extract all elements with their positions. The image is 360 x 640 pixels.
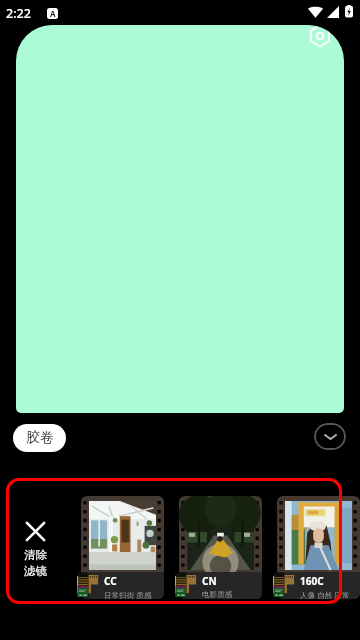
staticText: 2:22 [6,5,31,22]
staticText: CC [104,574,117,588]
staticText: 电影质感 [202,590,233,599]
button[interactable]: 160C [277,496,360,599]
staticText: 160C [300,574,324,588]
staticText: CN [202,574,217,588]
staticText: A [50,8,56,19]
staticText: 胶卷 [26,429,54,447]
staticText: 日常扫街 质感 [104,590,152,599]
button[interactable]: 清除 [11,522,59,584]
staticText: 清除 [24,548,47,562]
button[interactable]: CC [81,496,164,599]
staticText: 人像 自然 日常 [300,590,350,599]
button[interactable]: Expand filters [314,423,346,450]
staticText: 滤镜 [24,564,47,578]
button[interactable]: Lens settings [302,25,338,54]
button[interactable]: CN [179,496,262,599]
button[interactable]: 胶卷 [13,424,66,452]
